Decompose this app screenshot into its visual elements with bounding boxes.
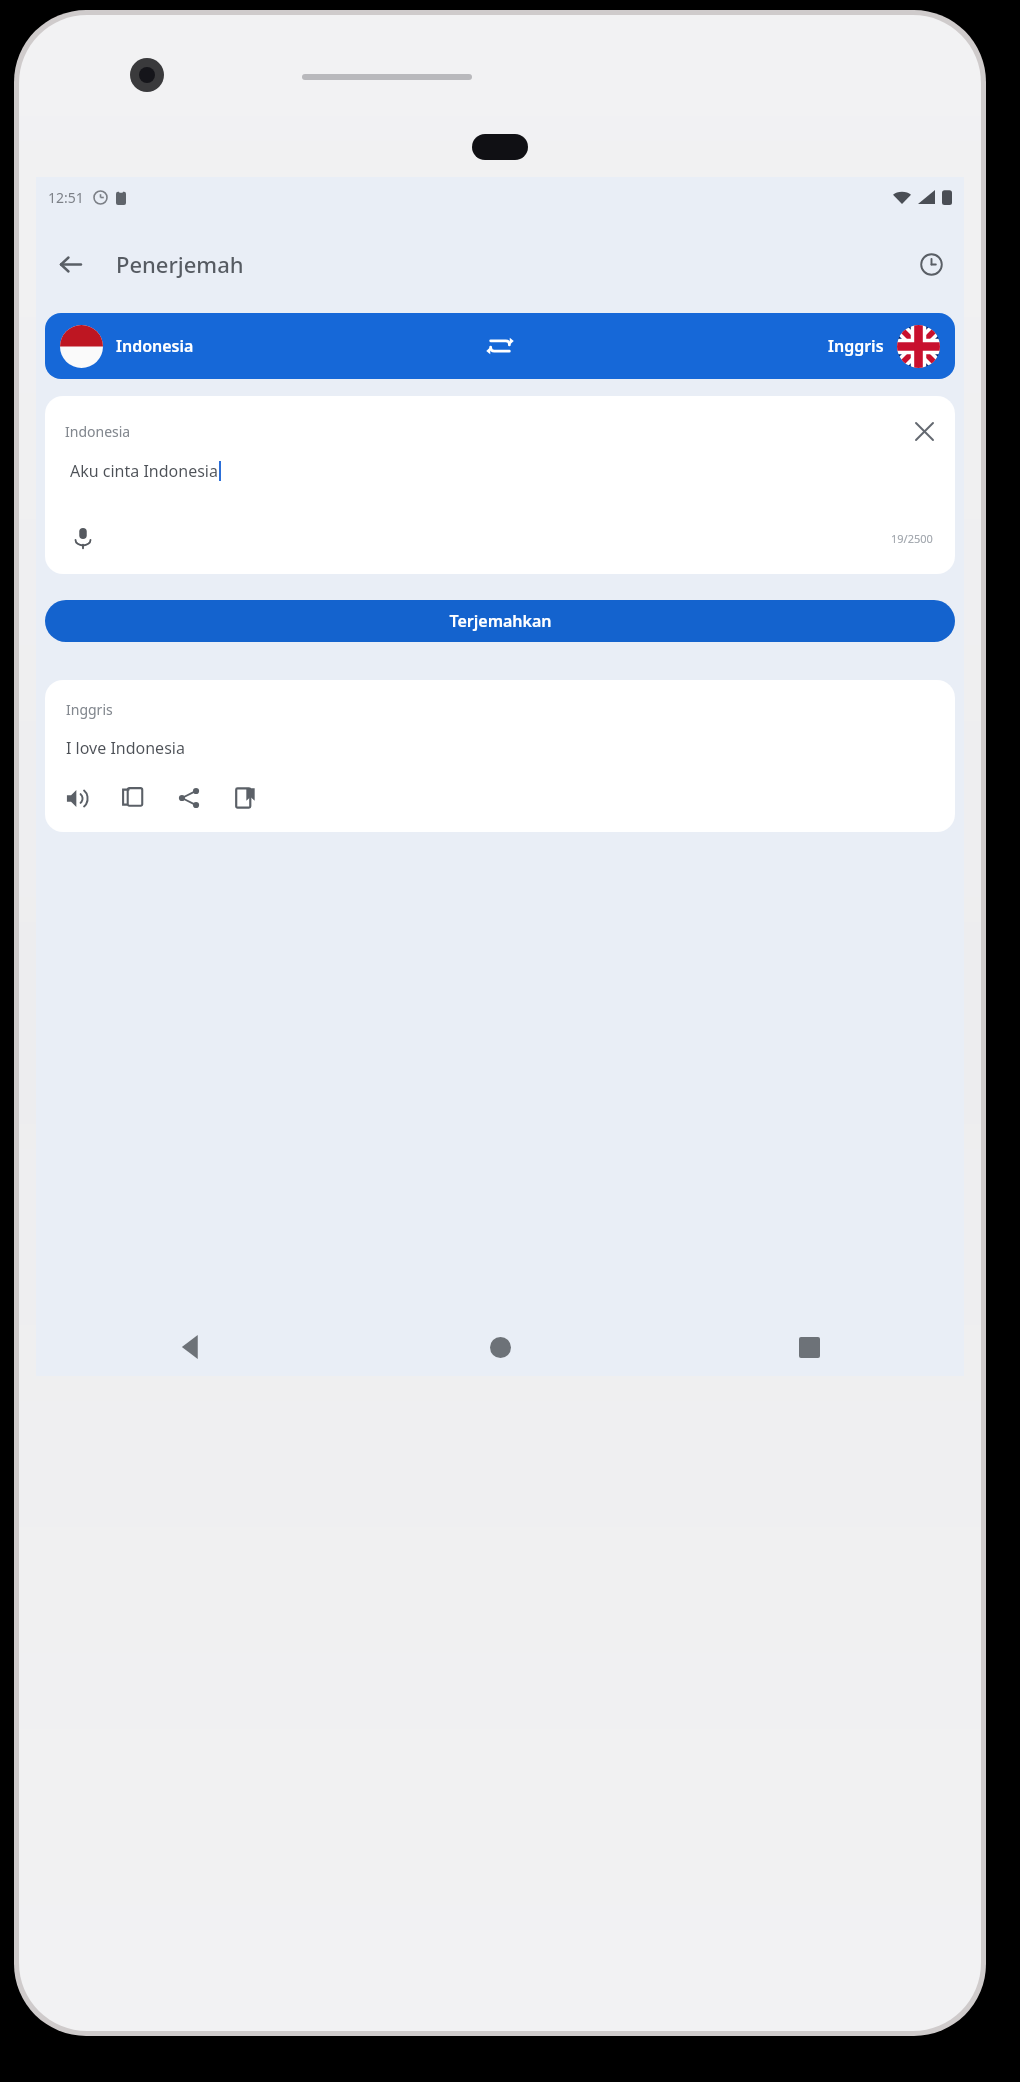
button[interactable]: Copy	[113, 778, 153, 818]
staticText: Aku cinta Indonesia	[70, 460, 218, 482]
button[interactable]: Voice input	[63, 518, 103, 558]
staticText: Penerjemah	[116, 249, 244, 279]
button[interactable]: Inggris	[526, 313, 955, 379]
staticText: I love Indonesia	[66, 737, 185, 759]
button[interactable]: Back	[36, 1315, 346, 1379]
staticText: Indonesia	[65, 422, 131, 441]
button[interactable]: Listen	[57, 778, 97, 818]
button[interactable]: Indonesia	[45, 313, 474, 379]
button[interactable]: Swap languages	[474, 320, 526, 372]
button[interactable]: Home	[346, 1315, 655, 1379]
button[interactable]: Back	[46, 240, 94, 288]
button[interactable]: Terjemahkan	[45, 600, 955, 642]
staticText: Inggris	[828, 335, 884, 357]
button[interactable]: History	[908, 241, 954, 287]
staticText: 12:51	[48, 188, 84, 207]
staticText: Inggris	[66, 700, 113, 719]
staticText: Indonesia	[116, 335, 194, 357]
button[interactable]: Save	[225, 778, 265, 818]
button[interactable]: Recent apps	[655, 1315, 964, 1379]
staticText: 19/2500	[891, 531, 933, 546]
button[interactable]: Clear text	[907, 414, 941, 448]
button[interactable]: Share	[169, 778, 209, 818]
staticText: Terjemahkan	[449, 610, 552, 632]
